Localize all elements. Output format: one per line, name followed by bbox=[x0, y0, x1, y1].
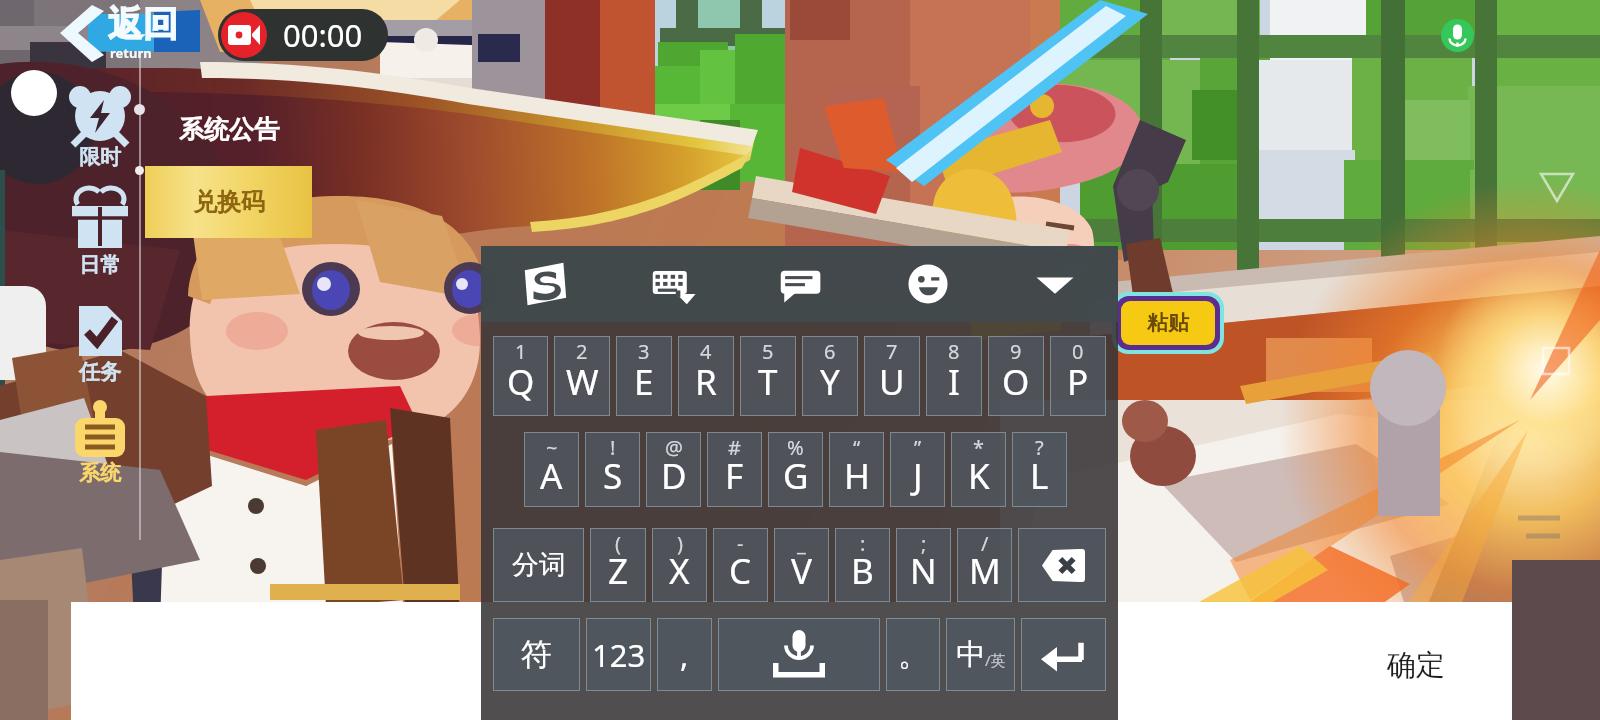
staticText: U bbox=[879, 358, 905, 406]
button[interactable]: % bbox=[768, 432, 823, 507]
staticText: @ bbox=[665, 434, 683, 461]
button[interactable]: 7 bbox=[864, 336, 920, 416]
button[interactable]: 123 bbox=[586, 618, 651, 691]
staticText: N bbox=[910, 547, 937, 595]
staticText: 系统公告 bbox=[179, 114, 279, 145]
button[interactable]: 粘贴 bbox=[1121, 301, 1215, 345]
staticText: / bbox=[981, 530, 989, 557]
staticText: F bbox=[725, 452, 744, 500]
staticText: 00:00 bbox=[283, 14, 363, 56]
button[interactable]: 1 bbox=[493, 336, 548, 416]
button[interactable]: 。 bbox=[886, 618, 940, 691]
staticText: 6 bbox=[824, 338, 836, 365]
staticText: P bbox=[1067, 358, 1089, 406]
staticText: 7 bbox=[886, 338, 898, 365]
button[interactable]: : bbox=[835, 528, 890, 602]
button[interactable]: ! bbox=[585, 432, 640, 507]
button[interactable]: 5 bbox=[740, 336, 796, 416]
staticText: D bbox=[661, 452, 687, 500]
button[interactable]: 8 bbox=[926, 336, 982, 416]
button[interactable]: ? bbox=[1012, 432, 1067, 507]
button[interactable]: 兑换码 bbox=[145, 166, 312, 238]
staticText: 8 bbox=[948, 338, 960, 365]
button[interactable]: 9 bbox=[988, 336, 1044, 416]
button[interactable]: 回车 bbox=[1021, 618, 1106, 691]
button[interactable]: - bbox=[713, 528, 768, 602]
staticText: ! bbox=[610, 434, 616, 461]
button[interactable]: @ bbox=[646, 432, 701, 507]
staticText: “ bbox=[853, 434, 861, 461]
staticText: Z bbox=[608, 547, 629, 595]
button[interactable]: 任务 bbox=[64, 303, 136, 385]
staticText: 中 bbox=[956, 636, 985, 673]
button[interactable]: 短语 bbox=[737, 246, 864, 322]
staticText: H bbox=[844, 452, 870, 500]
staticText: R bbox=[695, 358, 717, 406]
staticText: ) bbox=[677, 530, 683, 557]
staticText: 日常 bbox=[79, 252, 121, 278]
button[interactable]: ~ bbox=[524, 432, 579, 507]
button[interactable]: 表情 bbox=[864, 246, 991, 322]
staticText: 符 bbox=[521, 635, 552, 674]
staticText: T bbox=[758, 358, 778, 406]
button[interactable]: 3 bbox=[616, 336, 672, 416]
staticText: G bbox=[783, 452, 809, 500]
staticText: L bbox=[1030, 452, 1049, 500]
button[interactable]: 空格 / 语音输入 bbox=[718, 618, 880, 691]
staticText: J bbox=[913, 452, 923, 500]
staticText: 4 bbox=[700, 338, 712, 365]
button[interactable] bbox=[71, 602, 1512, 720]
button[interactable]: “ bbox=[829, 432, 884, 507]
staticText: 确定 bbox=[1387, 647, 1445, 684]
staticText: B bbox=[851, 547, 874, 595]
staticText: 1 bbox=[515, 338, 527, 365]
button[interactable]: 中 bbox=[946, 618, 1015, 691]
button[interactable]: 4 bbox=[678, 336, 734, 416]
button[interactable]: 语音 bbox=[1441, 19, 1474, 52]
staticText: 粘贴 bbox=[1147, 310, 1189, 336]
staticText: W bbox=[566, 358, 599, 406]
button[interactable]: 限时 bbox=[64, 88, 136, 170]
button[interactable]: 符 bbox=[493, 618, 580, 691]
staticText: ? bbox=[1035, 434, 1044, 461]
staticText: ; bbox=[921, 530, 927, 557]
staticText: - bbox=[737, 530, 744, 557]
button[interactable]: 确定 bbox=[1310, 602, 1512, 720]
staticText: Y bbox=[820, 358, 840, 406]
button[interactable]: 00:00 bbox=[221, 9, 385, 61]
button[interactable]: * bbox=[951, 432, 1006, 507]
staticText: _ bbox=[797, 530, 806, 557]
staticText: S bbox=[603, 452, 623, 500]
button[interactable]: 分词 bbox=[493, 528, 584, 602]
staticText: ~ bbox=[546, 434, 558, 461]
button[interactable]: 日常 bbox=[64, 196, 136, 278]
button[interactable]: 2 bbox=[554, 336, 610, 416]
button[interactable]: 删除 bbox=[1018, 528, 1106, 602]
button[interactable]: ) bbox=[652, 528, 707, 602]
button[interactable]: ; bbox=[896, 528, 951, 602]
button[interactable]: _ bbox=[774, 528, 829, 602]
button[interactable]: ( bbox=[590, 528, 646, 602]
staticText: 3 bbox=[638, 338, 650, 365]
staticText: X bbox=[669, 547, 690, 595]
staticText: 兑换码 bbox=[193, 187, 265, 217]
button[interactable]: 收起键盘 bbox=[991, 246, 1118, 322]
button[interactable]: 返回 bbox=[58, 0, 208, 70]
button[interactable]: 6 bbox=[802, 336, 858, 416]
button[interactable]: 系统 bbox=[64, 404, 136, 486]
button[interactable]: / bbox=[957, 528, 1012, 602]
button[interactable]: ” bbox=[890, 432, 945, 507]
button[interactable]: 键盘设置 bbox=[609, 246, 737, 322]
staticText: 9 bbox=[1010, 338, 1022, 365]
button[interactable]: # bbox=[707, 432, 762, 507]
button[interactable]: 输入法 bbox=[481, 246, 609, 322]
staticText: A bbox=[540, 452, 563, 500]
staticText: # bbox=[728, 434, 741, 461]
staticText: 。 bbox=[898, 635, 929, 674]
staticText: K bbox=[968, 452, 990, 500]
button[interactable]: , bbox=[657, 618, 712, 691]
staticText: E bbox=[634, 358, 654, 406]
staticText: 系统 bbox=[79, 460, 121, 486]
button[interactable]: 0 bbox=[1050, 336, 1106, 416]
staticText: return bbox=[110, 44, 152, 62]
